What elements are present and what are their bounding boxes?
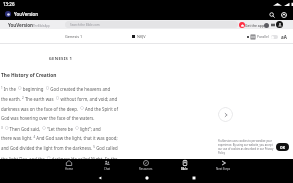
staticText: Genesis 1 — [65, 34, 83, 39]
button[interactable]: Account — [279, 10, 288, 19]
staticText: Resources — [139, 167, 153, 171]
button[interactable]: Home — [141, 172, 152, 183]
button[interactable]: Text settings — [281, 34, 287, 40]
button[interactable]: YouVersion — [8, 22, 50, 28]
staticText: YouVersion — [8, 22, 33, 28]
button[interactable]: Chat — [88, 159, 126, 172]
staticText: Get the app — [245, 23, 264, 28]
button[interactable]: OK — [276, 143, 289, 151]
button[interactable]: Recent apps — [188, 172, 199, 183]
staticText: there was light. 4 And God saw the light… — [1, 135, 118, 141]
staticText: 13:26 — [3, 1, 15, 7]
button[interactable]: NKJV — [132, 34, 146, 39]
button[interactable]: Genesis 1 — [65, 34, 83, 39]
button[interactable]: Next chapter — [218, 107, 233, 122]
staticText: Search the Bible.com — [70, 23, 100, 27]
button[interactable]: Parallel — [247, 34, 278, 39]
staticText: OK — [280, 145, 285, 150]
staticText: TheBibleApp — [33, 24, 50, 28]
staticText: God was hovering over the face of the wa… — [1, 115, 95, 121]
button[interactable]: Resources — [126, 159, 165, 172]
button[interactable]: Get the app — [239, 22, 269, 28]
staticText: the earth. 2 The earth was ○ without for… — [1, 95, 118, 102]
button[interactable]: Bible — [165, 159, 204, 172]
staticText: Home — [65, 167, 73, 171]
staticText: YouVersion — [14, 11, 39, 17]
staticText: Parallel — [257, 34, 269, 39]
staticText: YouVersion uses cookies to personalize y… — [218, 139, 274, 155]
staticText: 1 In the ○ beginning ○ God created the h… — [1, 85, 111, 92]
staticText: aA — [281, 34, 287, 40]
staticText: 3 ○ Then God said, ○ “Let there be ○ lig… — [1, 125, 101, 132]
staticText: Bible — [181, 167, 188, 171]
button[interactable]: Search — [267, 10, 276, 19]
button[interactable]: Profile — [276, 21, 283, 28]
button[interactable]: Back — [94, 172, 105, 183]
staticText: and God divided the light from the darkn… — [1, 145, 118, 151]
button[interactable]: Search the Bible.com — [70, 21, 238, 28]
staticText: NKJV — [137, 34, 146, 39]
staticText: the light Day, and the ○ darkness He cal… — [1, 155, 118, 162]
staticText: Chat — [104, 167, 111, 171]
staticText: The History of Creation — [1, 72, 57, 79]
staticText: Next Steps — [216, 167, 231, 171]
button[interactable]: Menu — [269, 21, 276, 28]
button[interactable]: Home — [50, 159, 88, 172]
button[interactable]: Next Steps — [204, 159, 243, 172]
staticText: darkness was on the face of the deep. ○ … — [1, 105, 118, 112]
staticText: GENESIS 1 — [0, 56, 121, 62]
